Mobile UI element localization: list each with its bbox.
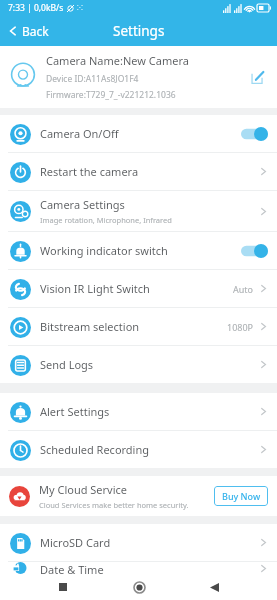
button[interactable]: Buy Now (214, 486, 268, 506)
button[interactable]: Scheduled Recording (0, 431, 277, 468)
staticText: Camera On/Off (40, 126, 119, 141)
staticText: Send Logs (40, 357, 94, 372)
staticText: Auto (233, 283, 254, 295)
staticText: Device ID:A11As8JO1F4 (46, 73, 139, 85)
staticText: Camera Name:New Camera (46, 53, 189, 68)
staticText: Cloud Services make better home security… (39, 500, 189, 510)
staticText: Settings (113, 22, 165, 40)
button[interactable]: Alert Settings (0, 393, 277, 430)
button[interactable]: Toggle (241, 244, 268, 258)
button[interactable]: Back (201, 574, 227, 600)
staticText: Back (22, 23, 49, 39)
button[interactable]: Vision IR Light Switch (0, 270, 277, 307)
button[interactable]: My Cloud Service (0, 476, 277, 516)
staticText: Camera Settings (40, 197, 125, 212)
button[interactable]: MicroSD Card (0, 524, 277, 561)
staticText: Date & Time (40, 562, 104, 574)
staticText: Buy Now (222, 490, 261, 502)
staticText: Image rotation, Microphone, Infrared (40, 215, 172, 225)
staticText: 1080P (227, 321, 254, 333)
staticText: Firmware:T729_7_-v221212.1036 (46, 89, 176, 101)
button[interactable]: Restart the camera (0, 153, 277, 190)
button[interactable]: Send Logs (0, 346, 277, 383)
staticText: Scheduled Recording (40, 442, 150, 457)
staticText: 7:33 | 0,0kB/s (8, 2, 64, 14)
button[interactable]: Date & Time (0, 562, 277, 574)
staticText: Restart the camera (40, 164, 139, 179)
button[interactable]: Camera Settings (0, 191, 277, 231)
staticText: My Cloud Service (39, 482, 128, 497)
staticText: Working indicator switch (40, 243, 168, 258)
staticText: MicroSD Card (40, 535, 111, 550)
button[interactable]: Home (126, 574, 152, 600)
button[interactable]: Toggle (241, 127, 268, 141)
button[interactable]: Bitstream selection (0, 308, 277, 345)
button[interactable]: Edit camera name (245, 65, 269, 89)
staticText: ⁙ (77, 3, 83, 13)
button[interactable]: Camera On/Off (0, 115, 277, 152)
staticText: Vision IR Light Switch (40, 281, 150, 296)
button[interactable]: Back (0, 19, 59, 43)
button[interactable]: Working indicator switch (0, 232, 277, 269)
button[interactable]: Camera Name:New Camera (0, 46, 277, 108)
button[interactable]: Recents (50, 574, 76, 600)
staticText: Alert Settings (40, 404, 110, 419)
staticText: Bitstream selection (40, 319, 140, 334)
